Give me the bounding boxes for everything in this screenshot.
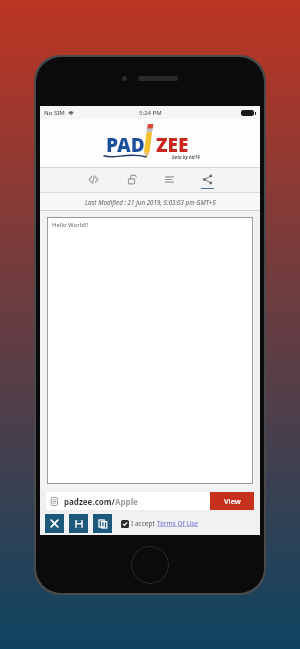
staticText: Apple	[115, 496, 138, 507]
button[interactable]: View	[210, 492, 254, 510]
staticText: beta by bit14	[172, 154, 200, 160]
button[interactable]: Close	[45, 514, 64, 533]
staticText: Last Modified : 21 Jun 2019, 5:03:03 pm …	[85, 198, 216, 206]
button[interactable]: Copy	[93, 514, 112, 533]
staticText: Terms Of Use	[157, 519, 198, 528]
staticText: Hello World!!	[52, 221, 89, 229]
button[interactable]: I accept	[121, 519, 198, 528]
staticText: No SIM	[44, 109, 65, 117]
staticText: I accept	[131, 519, 157, 528]
button[interactable]: Code view	[80, 168, 106, 192]
staticText: 5:24 PM	[139, 109, 162, 117]
button[interactable]: Save	[69, 514, 88, 533]
staticText: View	[224, 496, 241, 506]
staticText: PAD	[106, 132, 145, 158]
staticText: ZEE	[156, 132, 189, 158]
button[interactable]: padzee.com/	[46, 492, 210, 510]
button[interactable]: List	[156, 168, 182, 192]
button[interactable]: Share	[194, 168, 220, 192]
button[interactable]: Lock	[118, 168, 144, 192]
staticText: padzee.com/	[64, 496, 115, 507]
